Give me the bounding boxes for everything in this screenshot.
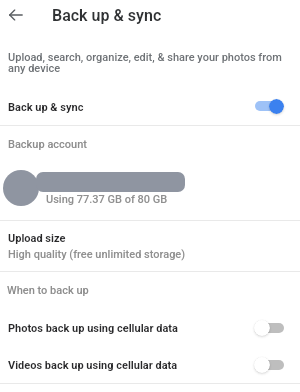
button[interactable]: Photos back up using cellular data (0, 310, 300, 346)
staticText: any device (8, 62, 61, 75)
staticText: Photos back up using cellular data (8, 322, 178, 335)
staticText: When to back up (7, 284, 89, 297)
staticText: Videos back up using cellular data (8, 359, 178, 372)
button[interactable]: Videos back up using cellular data (0, 347, 300, 383)
staticText: Backup account (8, 138, 87, 151)
staticText: Back up & sync (52, 6, 162, 25)
button[interactable]: Back up & sync (0, 92, 300, 125)
button[interactable]: Upload size (0, 220, 300, 270)
staticText: Upload, search, organize, edit, & share … (8, 51, 282, 64)
button[interactable]: Back (4, 3, 28, 27)
staticText: High quality (free unlimited storage) (8, 248, 186, 261)
staticText: Back up & sync (8, 101, 84, 114)
staticText: Using 77.37 GB of 80 GB (46, 193, 168, 206)
staticText: Upload size (8, 232, 66, 245)
